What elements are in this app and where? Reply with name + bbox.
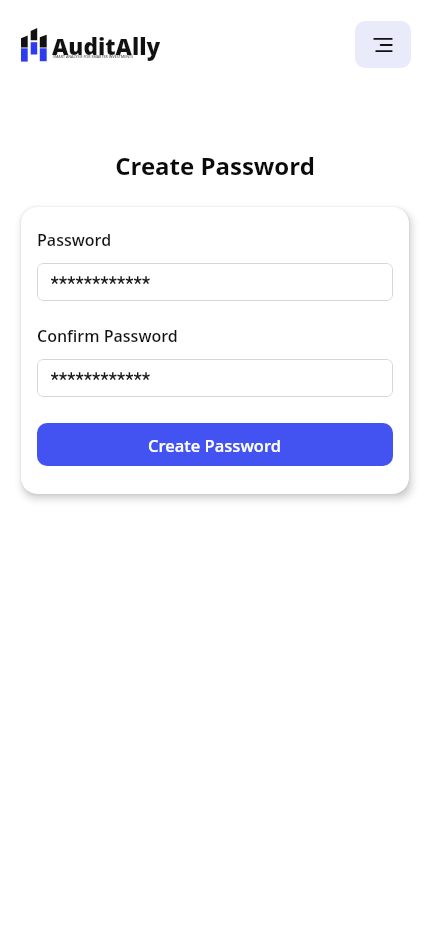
- staticText: AuditAlly: [52, 31, 161, 62]
- staticText: SMART ANALYSIS FOR SMARTER INVESTMENTS: [53, 54, 133, 59]
- button[interactable]: [37, 359, 393, 397]
- staticText: Confirm Password: [37, 325, 178, 347]
- button[interactable]: [37, 263, 393, 301]
- button[interactable]: [18, 24, 163, 64]
- button[interactable]: Create Password: [37, 423, 393, 466]
- button[interactable]: [355, 21, 411, 68]
- staticText: Password: [37, 229, 112, 251]
- staticText: Create Password: [0, 149, 430, 182]
- staticText: Create Password: [148, 434, 282, 456]
